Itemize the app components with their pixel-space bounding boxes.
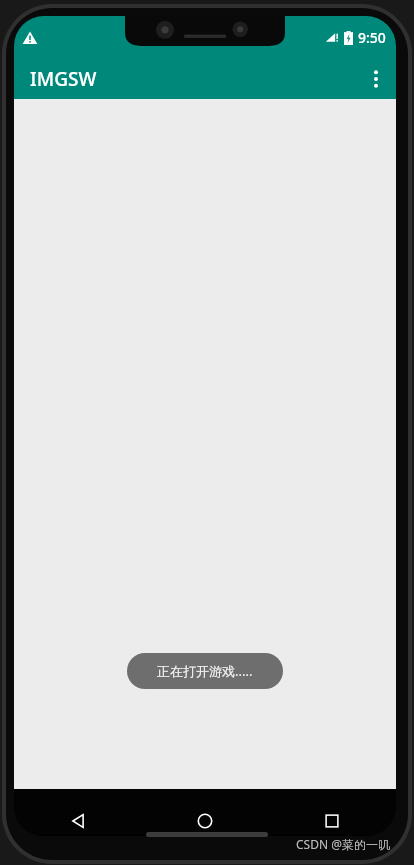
button[interactable]: Back — [56, 799, 100, 836]
button[interactable]: Recents — [310, 799, 354, 836]
staticText: IMGSW — [30, 66, 97, 92]
staticText: 正在打开游戏..... — [157, 662, 253, 680]
staticText: CSDN @菜的一叽 — [296, 836, 390, 852]
button[interactable]: More options — [356, 59, 396, 99]
button[interactable]: Home — [183, 799, 227, 836]
button[interactable]: 正在打开游戏..... — [127, 653, 283, 689]
staticText: 9:50 — [358, 28, 386, 47]
